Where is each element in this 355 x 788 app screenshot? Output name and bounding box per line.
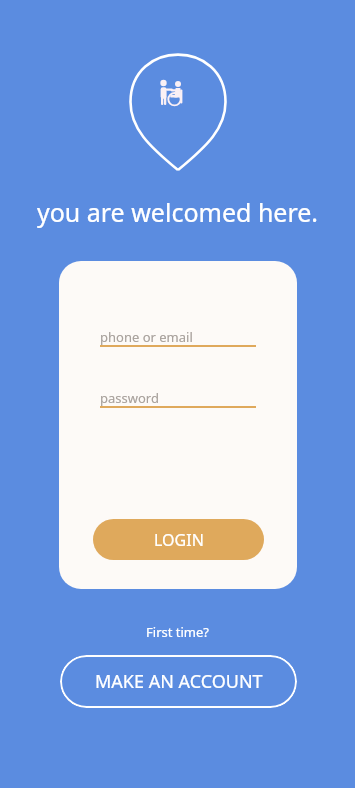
button[interactable]: LOGIN (93, 519, 264, 560)
staticText: First time? (0, 623, 355, 641)
button[interactable]: MAKE AN ACCOUNT (60, 655, 297, 708)
button[interactable]: phone or email (100, 322, 256, 352)
staticText: phone or email (100, 328, 193, 346)
staticText: LOGIN (154, 529, 204, 551)
staticText: you are welcomed here. (0, 195, 355, 229)
staticText: MAKE AN ACCOUNT (95, 669, 263, 694)
staticText: password (100, 389, 159, 407)
button[interactable]: password (100, 383, 256, 413)
other: Location logo (130, 44, 226, 172)
